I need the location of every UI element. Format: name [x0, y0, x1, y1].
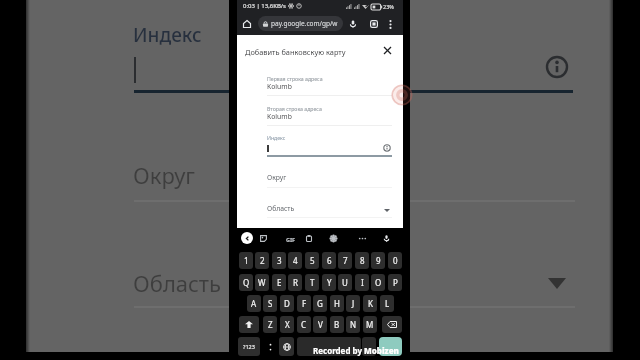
staticText: Mobizen — [364, 345, 399, 356]
button[interactable]: 8 — [355, 252, 369, 269]
button[interactable]: D — [280, 295, 294, 312]
staticText: Округ — [133, 160, 195, 190]
button[interactable]: Change language — [279, 337, 294, 356]
button[interactable]: N — [346, 316, 360, 333]
staticText: X — [285, 319, 290, 330]
staticText: E — [277, 277, 282, 288]
staticText: D — [284, 298, 290, 309]
staticText: N — [350, 319, 357, 330]
button[interactable]: 4 — [288, 252, 302, 269]
button[interactable]: Tabs — [366, 16, 382, 32]
button[interactable]: Q — [239, 274, 253, 291]
button[interactable]: W — [255, 274, 269, 291]
button[interactable]: 0 — [388, 252, 402, 269]
button[interactable]: More options — [383, 17, 397, 31]
button[interactable]: Voice input — [379, 231, 393, 245]
button[interactable]: 6 — [322, 252, 336, 269]
button[interactable]: Clipboard — [302, 231, 316, 245]
button[interactable]: Space — [297, 337, 361, 356]
staticText: Область — [267, 204, 295, 213]
button[interactable]: 9 — [371, 252, 385, 269]
button[interactable]: Backspace — [382, 316, 402, 333]
button[interactable]: Stickers — [256, 231, 270, 245]
button[interactable]: I — [355, 274, 369, 291]
button[interactable]: pay.google.com/gp/w — [258, 16, 343, 31]
button[interactable]: Y — [322, 274, 336, 291]
staticText: 4 — [293, 255, 298, 266]
button[interactable]: 2 — [255, 252, 269, 269]
staticText: Kolumb — [267, 82, 292, 91]
button[interactable]: ?123 — [238, 337, 260, 356]
staticText: H — [334, 298, 340, 309]
button[interactable]: G — [313, 295, 327, 312]
button[interactable]: O — [371, 274, 385, 291]
staticText: Kolumb — [267, 112, 292, 121]
staticText: 2 — [260, 255, 265, 266]
staticText: 6 — [327, 255, 332, 266]
staticText: Округ — [267, 173, 287, 182]
staticText: S — [268, 298, 273, 309]
staticText: M — [366, 319, 374, 330]
staticText: Y — [327, 277, 332, 288]
button[interactable]: E — [272, 274, 286, 291]
button[interactable]: H — [330, 295, 344, 312]
button[interactable]: Close — [379, 42, 395, 58]
staticText: Индекс — [133, 22, 202, 48]
button[interactable]: F — [297, 295, 311, 312]
staticText: 3 — [277, 255, 282, 266]
staticText: 9 — [376, 255, 381, 266]
staticText: P — [393, 277, 398, 288]
button[interactable]: Comma — [263, 337, 277, 356]
staticText: 0 — [393, 255, 398, 266]
staticText: I — [361, 277, 364, 288]
button[interactable]: 7 — [338, 252, 352, 269]
button[interactable]: Voice search — [345, 16, 361, 32]
staticText: A — [251, 298, 257, 309]
button[interactable]: M — [363, 316, 377, 333]
button[interactable]: L — [380, 295, 394, 312]
button[interactable]: J — [346, 295, 360, 312]
staticText: T — [310, 277, 315, 288]
staticText: Q — [243, 277, 250, 288]
staticText: Индекс — [267, 134, 286, 141]
button[interactable]: 5 — [305, 252, 319, 269]
staticText: Recorded by — [313, 345, 362, 356]
button[interactable]: K — [363, 295, 377, 312]
staticText: C — [301, 319, 307, 330]
button[interactable]: A — [247, 295, 261, 312]
staticText: 0:03 | 13,6KB/s — [243, 2, 286, 10]
button[interactable]: GIF — [286, 236, 296, 243]
staticText: O — [375, 277, 382, 288]
staticText: K — [368, 298, 373, 309]
button[interactable]: Period — [362, 337, 376, 356]
staticText: ?123 — [243, 343, 255, 350]
staticText: 1 — [244, 255, 249, 266]
button[interactable]: C — [297, 316, 311, 333]
button[interactable]: U — [338, 274, 352, 291]
button[interactable]: 1 — [239, 252, 253, 269]
staticText: 7 — [343, 255, 348, 266]
button[interactable]: 3 — [272, 252, 286, 269]
button[interactable]: More — [355, 231, 369, 245]
button[interactable]: T — [305, 274, 319, 291]
staticText: Добавить банковскую карту — [245, 47, 346, 57]
button[interactable]: Back — [241, 232, 253, 244]
button[interactable]: Shift — [239, 316, 259, 333]
staticText: Вторая строка адреса — [267, 105, 322, 112]
button[interactable]: B — [330, 316, 344, 333]
staticText: Z — [268, 319, 273, 330]
button[interactable]: Home — [239, 16, 255, 32]
staticText: U — [342, 277, 348, 288]
button[interactable]: R — [288, 274, 302, 291]
button[interactable]: X — [280, 316, 294, 333]
button[interactable]: V — [313, 316, 327, 333]
button[interactable]: P — [388, 274, 402, 291]
staticText: 23% — [383, 3, 394, 10]
button[interactable]: S — [263, 295, 277, 312]
staticText: B — [334, 319, 340, 330]
staticText: 8 — [360, 255, 365, 266]
button[interactable]: Settings — [326, 231, 340, 245]
button[interactable]: Enter — [379, 337, 402, 356]
button[interactable]: Z — [263, 316, 277, 333]
staticText: V — [318, 319, 323, 330]
